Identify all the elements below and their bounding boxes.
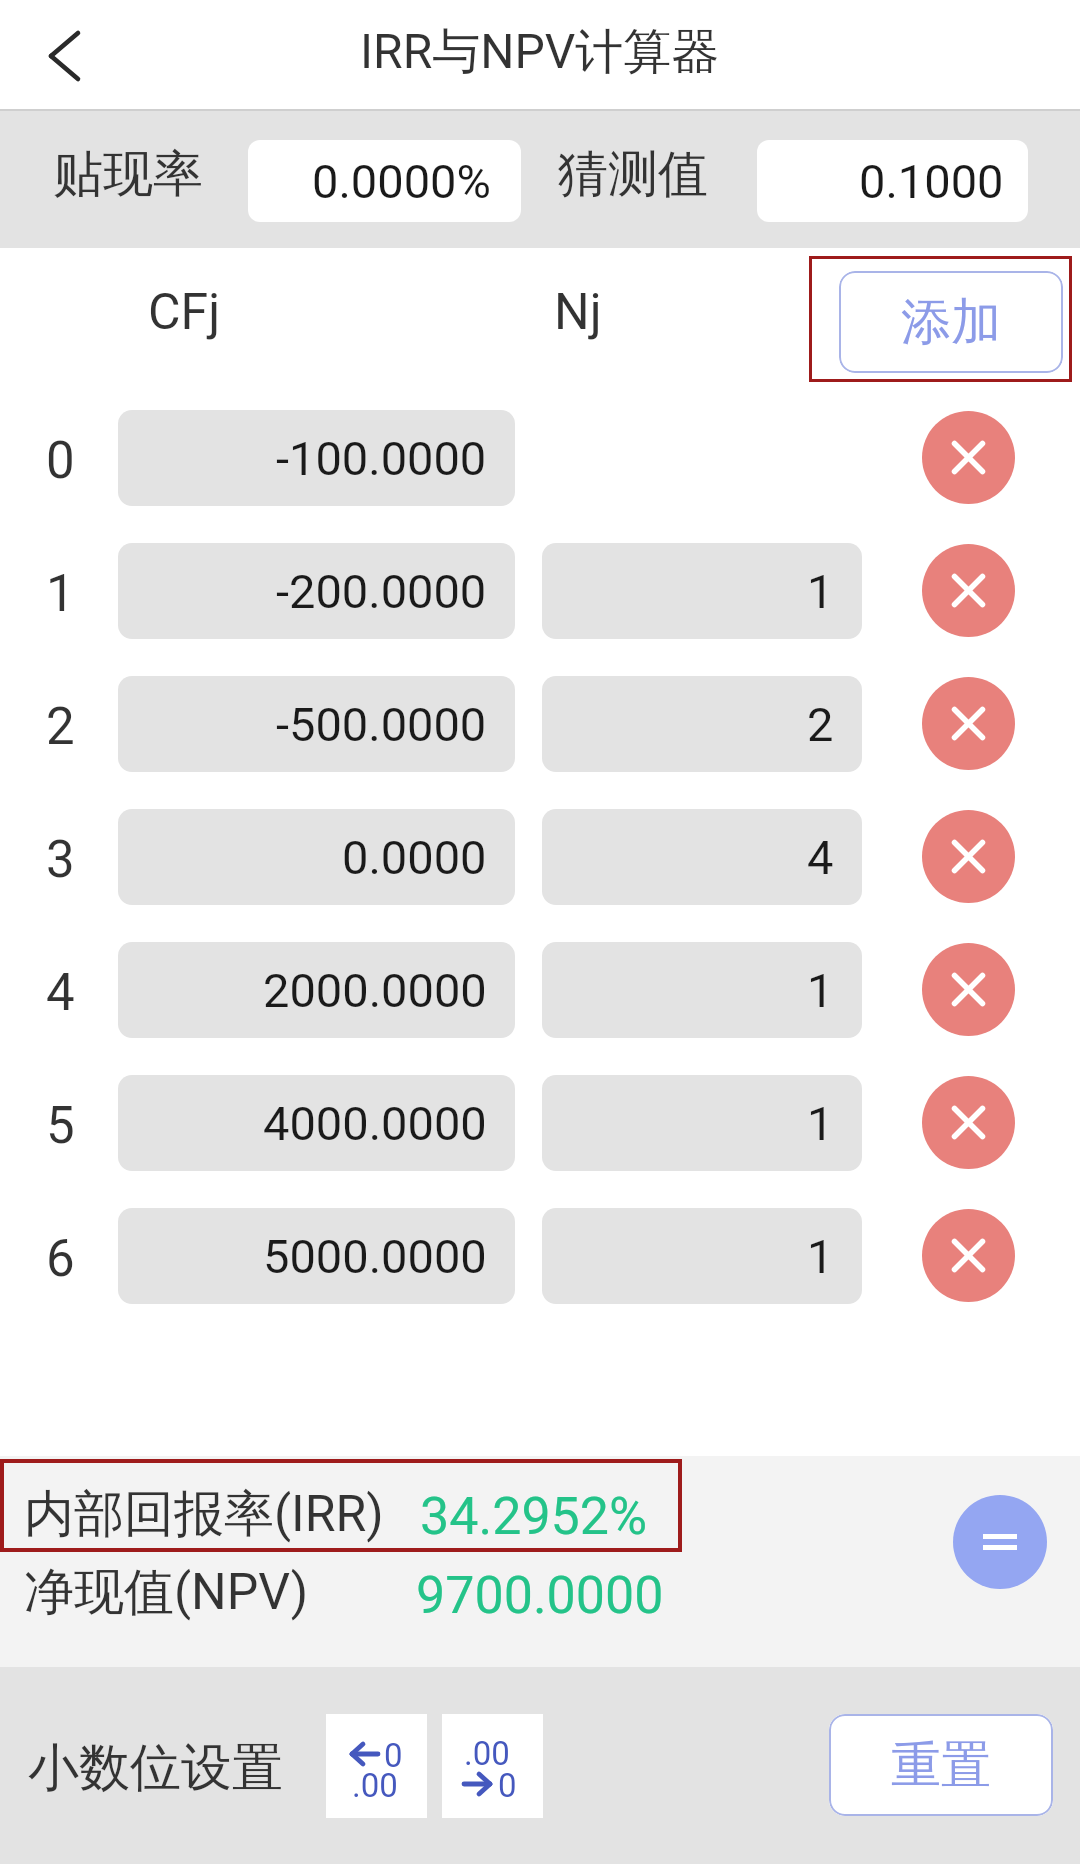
button[interactable]: 5000.0000 — [118, 1208, 515, 1304]
button[interactable]: -200.0000 — [118, 543, 515, 639]
button[interactable]: 1 — [542, 942, 862, 1038]
staticText: -200.0000 — [276, 564, 487, 619]
staticText: Nj — [554, 283, 602, 342]
staticText: 5000.0000 — [263, 1229, 487, 1284]
staticText: 猜测值 — [558, 143, 708, 206]
staticText: -500.0000 — [276, 697, 487, 752]
staticText: 2 — [46, 697, 75, 757]
button[interactable]: Decrease decimals — [326, 1714, 427, 1818]
button[interactable]: Calculate — [953, 1495, 1047, 1589]
staticText: 5 — [46, 1096, 75, 1156]
button[interactable]: -100.0000 — [118, 410, 515, 506]
button[interactable]: Back — [6, 0, 122, 111]
button[interactable]: 4 — [542, 809, 862, 905]
button[interactable]: Delete row 5 — [922, 1076, 1015, 1169]
button[interactable]: 0.1000 — [757, 140, 1028, 222]
staticText: 34.2952% — [420, 1486, 648, 1547]
staticText: 1 — [807, 963, 834, 1018]
staticText: 内部回报率(IRR) — [24, 1483, 384, 1546]
button[interactable]: 1 — [542, 543, 862, 639]
button[interactable]: Delete row 6 — [922, 1209, 1015, 1302]
staticText: 0.1000 — [859, 154, 1004, 209]
button[interactable]: -500.0000 — [118, 676, 515, 772]
button[interactable]: 重置 — [829, 1714, 1053, 1816]
staticText: 添加 — [901, 291, 1001, 354]
staticText: 贴现率 — [53, 143, 203, 206]
button[interactable]: 4000.0000 — [118, 1075, 515, 1171]
staticText: 2 — [807, 697, 834, 752]
button[interactable]: 0.0000 — [118, 809, 515, 905]
staticText: 2000.0000 — [263, 963, 487, 1018]
staticText: 4 — [807, 830, 834, 885]
staticText: 0 — [384, 1736, 403, 1775]
button[interactable]: 添加 — [839, 271, 1063, 373]
staticText: .00 — [464, 1734, 510, 1773]
staticText: 0 — [46, 431, 75, 491]
staticText: 3 — [46, 830, 75, 890]
staticText: 0.0000 — [342, 830, 487, 885]
staticText: 1 — [46, 564, 75, 624]
button[interactable]: Delete row 1 — [922, 544, 1015, 637]
staticText: .00 — [352, 1766, 398, 1805]
staticText: 9700.0000 — [416, 1565, 664, 1626]
button[interactable]: Delete row 3 — [922, 810, 1015, 903]
button[interactable]: 2 — [542, 676, 862, 772]
staticText: 0 — [498, 1766, 517, 1805]
staticText: 6 — [46, 1229, 75, 1289]
button[interactable]: Delete row 4 — [922, 943, 1015, 1036]
button[interactable]: 1 — [542, 1208, 862, 1304]
staticText: 4000.0000 — [263, 1096, 487, 1151]
staticText: 0.0000% — [312, 154, 491, 209]
staticText: 重置 — [891, 1734, 991, 1797]
button[interactable]: 2000.0000 — [118, 942, 515, 1038]
staticText: 1 — [807, 1229, 834, 1284]
staticText: 小数位设置 — [28, 1736, 283, 1800]
staticText: -100.0000 — [276, 431, 487, 486]
button[interactable]: 0.0000% — [248, 140, 521, 222]
staticText: CFj — [148, 283, 221, 342]
button[interactable]: Delete row 2 — [922, 677, 1015, 770]
button[interactable]: Increase decimals — [442, 1714, 543, 1818]
staticText: IRR与NPV计算器 — [360, 22, 720, 82]
staticText: 净现值(NPV) — [24, 1561, 309, 1624]
button[interactable]: Delete row 0 — [922, 411, 1015, 504]
staticText: 1 — [807, 564, 834, 619]
button[interactable]: 1 — [542, 1075, 862, 1171]
staticText: 4 — [46, 963, 75, 1023]
staticText: 1 — [807, 1096, 834, 1151]
